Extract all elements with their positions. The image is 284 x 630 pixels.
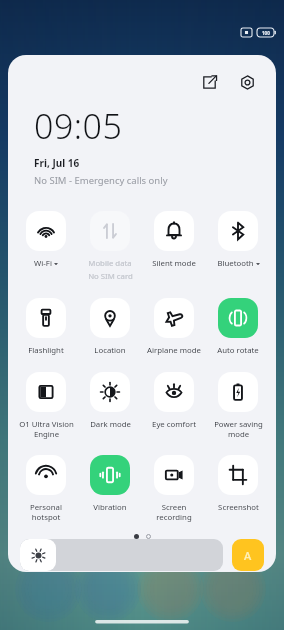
staticText: Auto rotate <box>217 345 259 356</box>
button[interactable]: Bluetooth <box>206 209 270 271</box>
staticText: Dark mode <box>90 419 131 430</box>
button[interactable]: Flashlight <box>14 296 78 358</box>
button[interactable]: Mobile data <box>78 209 142 284</box>
staticText: Location <box>94 345 126 356</box>
staticText: Personal hotspot <box>30 502 62 522</box>
staticText: Wi-Fi <box>34 258 52 269</box>
button[interactable]: Screen recording <box>142 453 206 524</box>
staticText: Vibration <box>93 502 127 513</box>
button[interactable]: Dark mode <box>78 370 142 432</box>
staticText: No SIM - Emergency calls only <box>34 174 168 187</box>
button[interactable]: Vibration <box>78 453 142 515</box>
button[interactable]: Eye comfort <box>142 370 206 432</box>
button[interactable]: Settings <box>234 69 260 95</box>
button[interactable]: Silent mode <box>142 209 206 271</box>
staticText: Mobile data <box>88 258 132 269</box>
staticText: O1 Ultra Vision Engine <box>19 419 74 439</box>
staticText: Bluetooth <box>217 258 254 269</box>
staticText: Eye comfort <box>152 419 196 430</box>
staticText: 100 <box>262 30 270 36</box>
staticText: 09:05 <box>34 103 123 149</box>
staticText: No SIM card <box>88 271 133 282</box>
button[interactable]: Location <box>78 296 142 358</box>
button[interactable]: Screenshot <box>206 453 270 515</box>
button[interactable]: Wi-Fi <box>14 209 78 271</box>
button[interactable]: Auto rotate <box>206 296 270 358</box>
staticText: A <box>244 548 252 563</box>
button[interactable]: Personal hotspot <box>14 453 78 524</box>
button[interactable]: O1 Ultra Vision Engine <box>14 370 78 441</box>
button[interactable]: Auto brightness <box>232 539 264 571</box>
staticText: Flashlight <box>28 345 64 356</box>
button[interactable]: Airplane mode <box>142 296 206 358</box>
staticText: Screenshot <box>218 502 259 513</box>
staticText: Screen recording <box>156 502 192 522</box>
staticText: Airplane mode <box>147 345 201 356</box>
button[interactable]: Brightness <box>20 539 223 571</box>
staticText: Silent mode <box>152 258 196 269</box>
staticText: Fri, Jul 16 <box>34 156 80 170</box>
button[interactable]: Edit quick settings <box>196 69 222 95</box>
button[interactable]: Power saving mode <box>206 370 270 441</box>
staticText: Power saving mode <box>214 419 263 439</box>
